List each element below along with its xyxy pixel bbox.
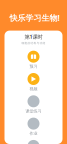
staticText: 第1课时 — [24, 33, 42, 40]
button[interactable]: 课堂练习 — [4, 95, 62, 114]
staticText: 课堂练习 — [25, 109, 41, 114]
button[interactable]: 测试 — [4, 140, 62, 144]
button[interactable]: 作业 — [4, 118, 62, 136]
staticText: 快乐学习生物! — [9, 12, 59, 23]
staticText: 细胞的结构与功能 — [21, 41, 45, 45]
staticText: 预习 — [29, 64, 37, 69]
staticText: 作业 — [29, 131, 37, 136]
button[interactable]: 预习 — [4, 51, 62, 69]
button[interactable]: 视频 — [4, 73, 62, 91]
staticText: 视频 — [29, 86, 37, 91]
